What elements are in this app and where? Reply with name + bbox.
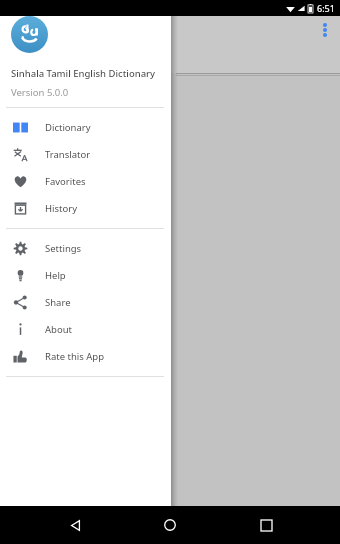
staticText: Version 5.0.0 xyxy=(11,86,69,99)
button[interactable]: Settings xyxy=(0,235,171,262)
staticText: Share xyxy=(45,296,71,309)
button[interactable]: Back xyxy=(54,506,96,544)
button[interactable]: Rate this App xyxy=(0,343,171,370)
staticText: Settings xyxy=(45,242,82,255)
button[interactable]: Favorites xyxy=(0,168,171,195)
button[interactable]: Share xyxy=(0,289,171,316)
staticText: Rate this App xyxy=(45,350,105,363)
button[interactable]: Translator xyxy=(0,141,171,168)
button[interactable]: Home xyxy=(149,506,191,544)
staticText: History xyxy=(45,202,77,215)
staticText: Favorites xyxy=(45,175,86,188)
staticText: Dictionary xyxy=(45,121,91,134)
staticText: 6:51 xyxy=(317,2,335,14)
button[interactable]: History xyxy=(0,195,171,222)
button[interactable]: Recent apps xyxy=(245,506,287,544)
staticText: About xyxy=(45,323,72,336)
staticText: Sinhala Tamil English Dictionary xyxy=(11,67,156,80)
button[interactable]: Dictionary xyxy=(0,114,171,141)
staticText: Help xyxy=(45,269,66,282)
button[interactable]: More options xyxy=(314,18,336,42)
button[interactable]: About xyxy=(0,316,171,343)
button[interactable]: Help xyxy=(0,262,171,289)
staticText: Translator xyxy=(45,148,91,161)
